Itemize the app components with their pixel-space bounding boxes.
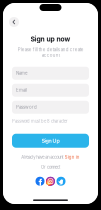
- staticText: Sign in: [65, 155, 80, 160]
- staticText: Please fill the details and create accou…: [17, 47, 83, 58]
- staticText: Sign up now: [30, 35, 70, 43]
- staticText: Already have an account: [21, 155, 63, 160]
- button[interactable]: Twitter: [56, 177, 65, 186]
- button[interactable]: Sign Up: [12, 134, 89, 148]
- staticText: Sign Up: [41, 137, 59, 144]
- button[interactable]: Back: [9, 17, 19, 27]
- button[interactable]: Sign in: [65, 155, 80, 160]
- staticText: Or connect: [41, 165, 60, 170]
- button[interactable]: Facebook: [35, 177, 44, 186]
- staticText: Name: [16, 71, 28, 76]
- staticText: Password: [16, 105, 37, 110]
- staticText: Email: [16, 88, 27, 93]
- staticText: Password must be 8 character: [12, 119, 68, 124]
- button[interactable]: Instagram: [46, 177, 55, 186]
